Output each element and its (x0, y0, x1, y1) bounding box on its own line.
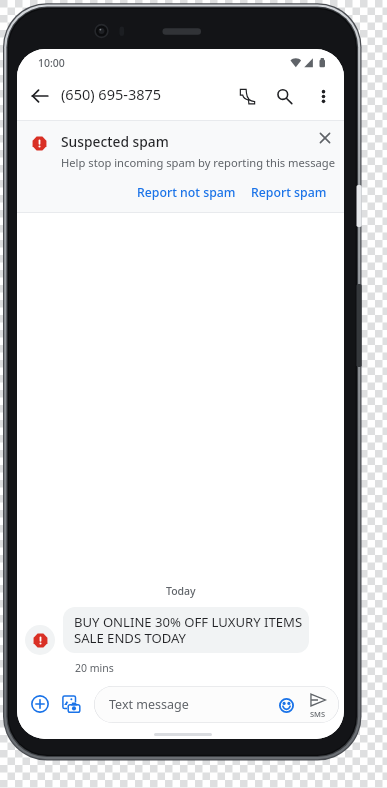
button[interactable]: Gallery (56, 689, 86, 719)
staticText: Suspected spam (61, 132, 169, 151)
button[interactable]: Send SMS (302, 689, 334, 721)
button[interactable]: More options (306, 79, 340, 113)
staticText: (650) 695-3875 (61, 84, 162, 104)
button[interactable]: Emoji (273, 692, 299, 718)
staticText: Help stop incoming spam by reporting thi… (61, 155, 336, 170)
button[interactable]: Search (267, 79, 301, 113)
button[interactable]: Report not spam (133, 181, 240, 204)
staticText: Today (166, 584, 196, 598)
staticText: Report spam (251, 184, 327, 201)
staticText: Text message (109, 696, 189, 713)
staticText: BUY ONLINE 30% OFF LUXURY ITEMS SALE END… (74, 613, 303, 647)
button[interactable]: Back (23, 79, 57, 113)
staticText: SMS (310, 709, 326, 719)
staticText: 10:00 (38, 56, 65, 70)
button[interactable]: BUY ONLINE 30% OFF LUXURY ITEMS SALE END… (63, 607, 309, 653)
button[interactable]: Text message (94, 686, 339, 723)
button[interactable]: Report spam (247, 181, 331, 204)
staticText: Report not spam (137, 184, 236, 201)
button[interactable]: Suspected spam contact (25, 625, 55, 655)
staticText: 20 mins (75, 661, 114, 675)
button[interactable]: Dismiss (312, 125, 338, 151)
button[interactable]: Call (230, 79, 264, 113)
button[interactable]: Add attachment (25, 689, 55, 719)
